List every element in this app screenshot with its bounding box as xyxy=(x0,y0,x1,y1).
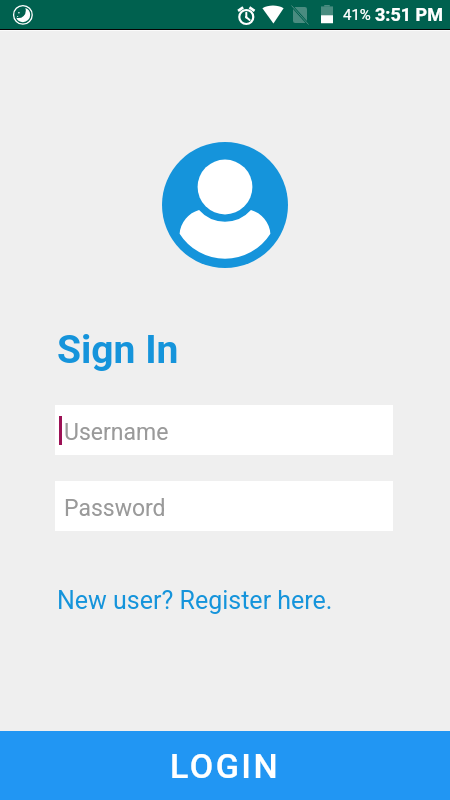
staticText: 41% xyxy=(343,6,371,24)
staticText: 3:51 PM xyxy=(375,4,443,25)
button[interactable]: LOGIN xyxy=(0,731,450,800)
staticText: New user? Register here. xyxy=(57,586,333,615)
other: Do not disturb xyxy=(8,0,37,29)
button[interactable]: Username xyxy=(55,405,393,455)
button[interactable]: Password xyxy=(55,481,393,531)
staticText: Username xyxy=(64,419,169,446)
staticText: LOGIN xyxy=(170,746,281,786)
button[interactable]: New user? Register here. xyxy=(57,586,333,615)
staticText: Sign In xyxy=(57,327,179,373)
staticText: Password xyxy=(64,495,166,522)
